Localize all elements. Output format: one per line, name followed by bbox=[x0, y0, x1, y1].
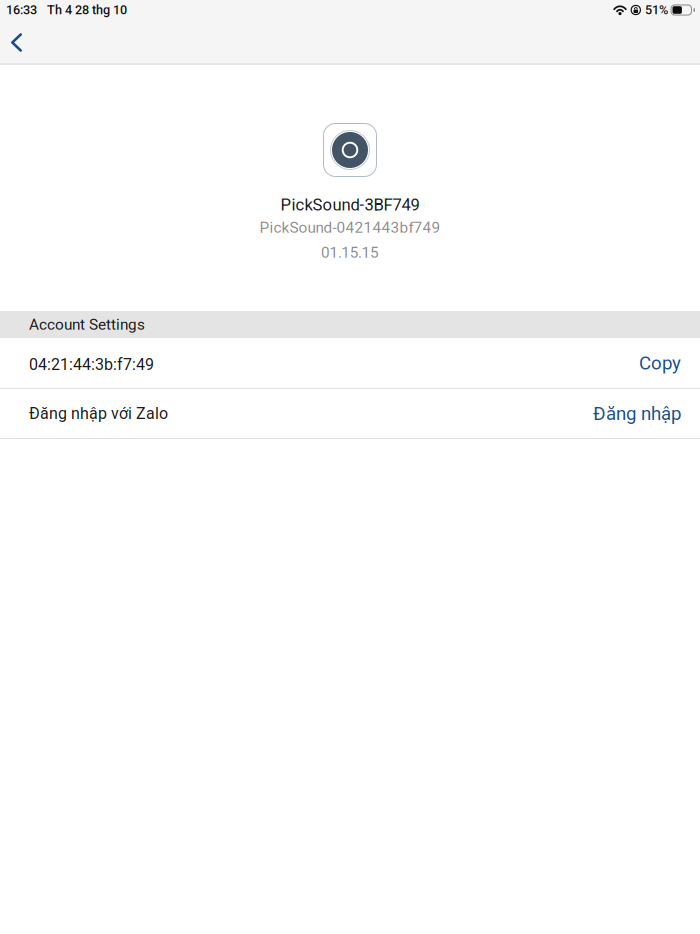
staticText: PickSound-3BF749 bbox=[280, 195, 419, 214]
staticText: Đăng nhập bbox=[593, 403, 681, 424]
staticText: 04:21:44:3b:f7:49 bbox=[29, 355, 154, 374]
button[interactable]: Copy bbox=[623, 338, 700, 388]
staticText: Account Settings bbox=[29, 315, 145, 333]
button[interactable]: Back bbox=[0, 21, 35, 62]
staticText: Th 4 28 thg 10 bbox=[47, 3, 127, 17]
staticText: 16:33 bbox=[6, 3, 37, 17]
staticText: Copy bbox=[639, 352, 681, 374]
staticText: 51% bbox=[645, 3, 668, 17]
staticText: Đăng nhập với Zalo bbox=[29, 404, 168, 423]
staticText: PickSound-0421443bf749 bbox=[259, 218, 440, 236]
button[interactable]: Đăng nhập bbox=[577, 389, 700, 438]
staticText: 01.15.15 bbox=[321, 243, 379, 261]
